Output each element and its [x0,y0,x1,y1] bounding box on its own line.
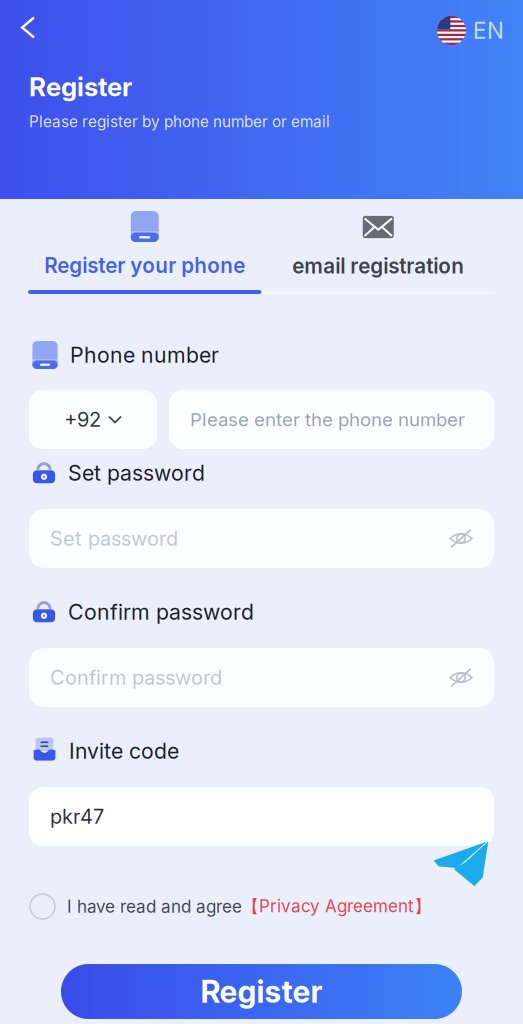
button[interactable]: Language English [437,8,523,47]
staticText: Register [200,973,322,1010]
staticText: Register [29,71,132,102]
button[interactable]: pkr47 [29,787,494,846]
button[interactable]: Set password [29,509,494,568]
button[interactable]: Please enter the phone number [169,390,494,449]
staticText: email registration [292,253,464,278]
button[interactable]: +92 [29,390,157,449]
staticText: Please enter the phone number [190,408,465,431]
button[interactable]: Back [0,11,52,44]
button[interactable]: Register your phone [28,199,261,296]
staticText: +92 [64,407,101,432]
staticText: Set password [68,460,205,486]
button[interactable]: email registration [261,199,495,295]
staticText: Set password [50,526,178,551]
button[interactable]: Confirm password [29,648,494,707]
button[interactable]: Register [61,964,462,1019]
staticText: pkr47 [50,804,104,829]
staticText: I have read and agree [67,896,242,917]
staticText: Register your phone [44,253,245,278]
button[interactable]: 【Privacy Agreement】 [242,896,431,917]
staticText: Please register by phone number or email [29,112,330,131]
staticText: Confirm password [50,665,222,690]
staticText: EN [473,17,504,44]
button[interactable]: Agree to privacy agreement [0,890,67,923]
staticText: Invite code [69,738,179,764]
staticText: Confirm password [68,599,254,625]
staticText: Phone number [70,342,219,368]
staticText: 【Privacy Agreement】 [242,896,431,917]
